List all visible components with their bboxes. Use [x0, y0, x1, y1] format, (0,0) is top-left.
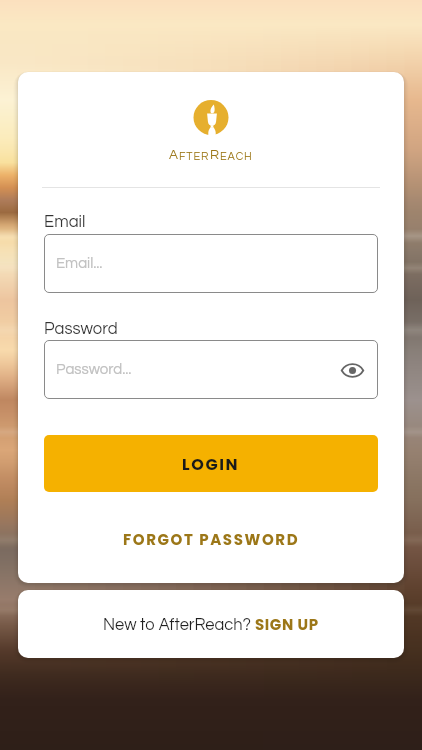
staticText: R — [210, 148, 220, 162]
staticText: Email — [44, 213, 86, 230]
button[interactable]: New to AfterReach? — [18, 590, 404, 658]
staticText: LOGIN — [182, 453, 240, 475]
staticText: New to AfterReach? — [103, 616, 255, 633]
staticText: FTER — [179, 151, 210, 162]
button[interactable]: Show password — [338, 356, 366, 384]
staticText: Email... — [56, 256, 103, 271]
staticText: Password... — [56, 362, 132, 377]
staticText: SIGN UP — [255, 614, 319, 635]
staticText: FORGOT PASSWORD — [123, 529, 300, 550]
staticText: A — [169, 148, 179, 162]
button[interactable]: FORGOT PASSWORD — [44, 524, 378, 554]
button[interactable]: LOGIN — [44, 435, 378, 492]
staticText: Password — [44, 320, 118, 337]
button[interactable]: Email... — [44, 234, 378, 293]
staticText: EACH — [220, 151, 253, 162]
button[interactable]: Password... — [44, 340, 378, 399]
